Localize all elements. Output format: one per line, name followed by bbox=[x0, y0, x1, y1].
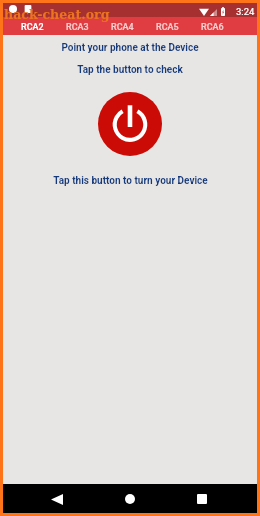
button[interactable]: RCA3 bbox=[55, 17, 100, 35]
staticText: RCA4 bbox=[111, 22, 134, 33]
button[interactable]: RCA2 bbox=[10, 17, 55, 35]
staticText: Point your phone at the Device bbox=[61, 42, 199, 54]
staticText: 3:24 bbox=[236, 6, 255, 17]
staticText: RCA3 bbox=[66, 22, 89, 33]
staticText: RCA6 bbox=[201, 22, 224, 33]
button[interactable]: Recents bbox=[189, 486, 215, 512]
staticText: RCA2 bbox=[21, 22, 44, 33]
button[interactable]: Home bbox=[117, 486, 143, 512]
staticText: Tap the button to check bbox=[77, 64, 183, 76]
button[interactable]: RCA4 bbox=[100, 17, 145, 35]
button[interactable]: Back bbox=[44, 486, 70, 512]
staticText: hack-cheat.org bbox=[4, 7, 110, 22]
button[interactable]: Power bbox=[98, 92, 162, 156]
button[interactable]: RCA6 bbox=[190, 17, 235, 35]
staticText: RCA5 bbox=[156, 22, 179, 33]
button[interactable]: RCA5 bbox=[145, 17, 190, 35]
staticText: Tap this button to turn your Device bbox=[53, 175, 208, 187]
